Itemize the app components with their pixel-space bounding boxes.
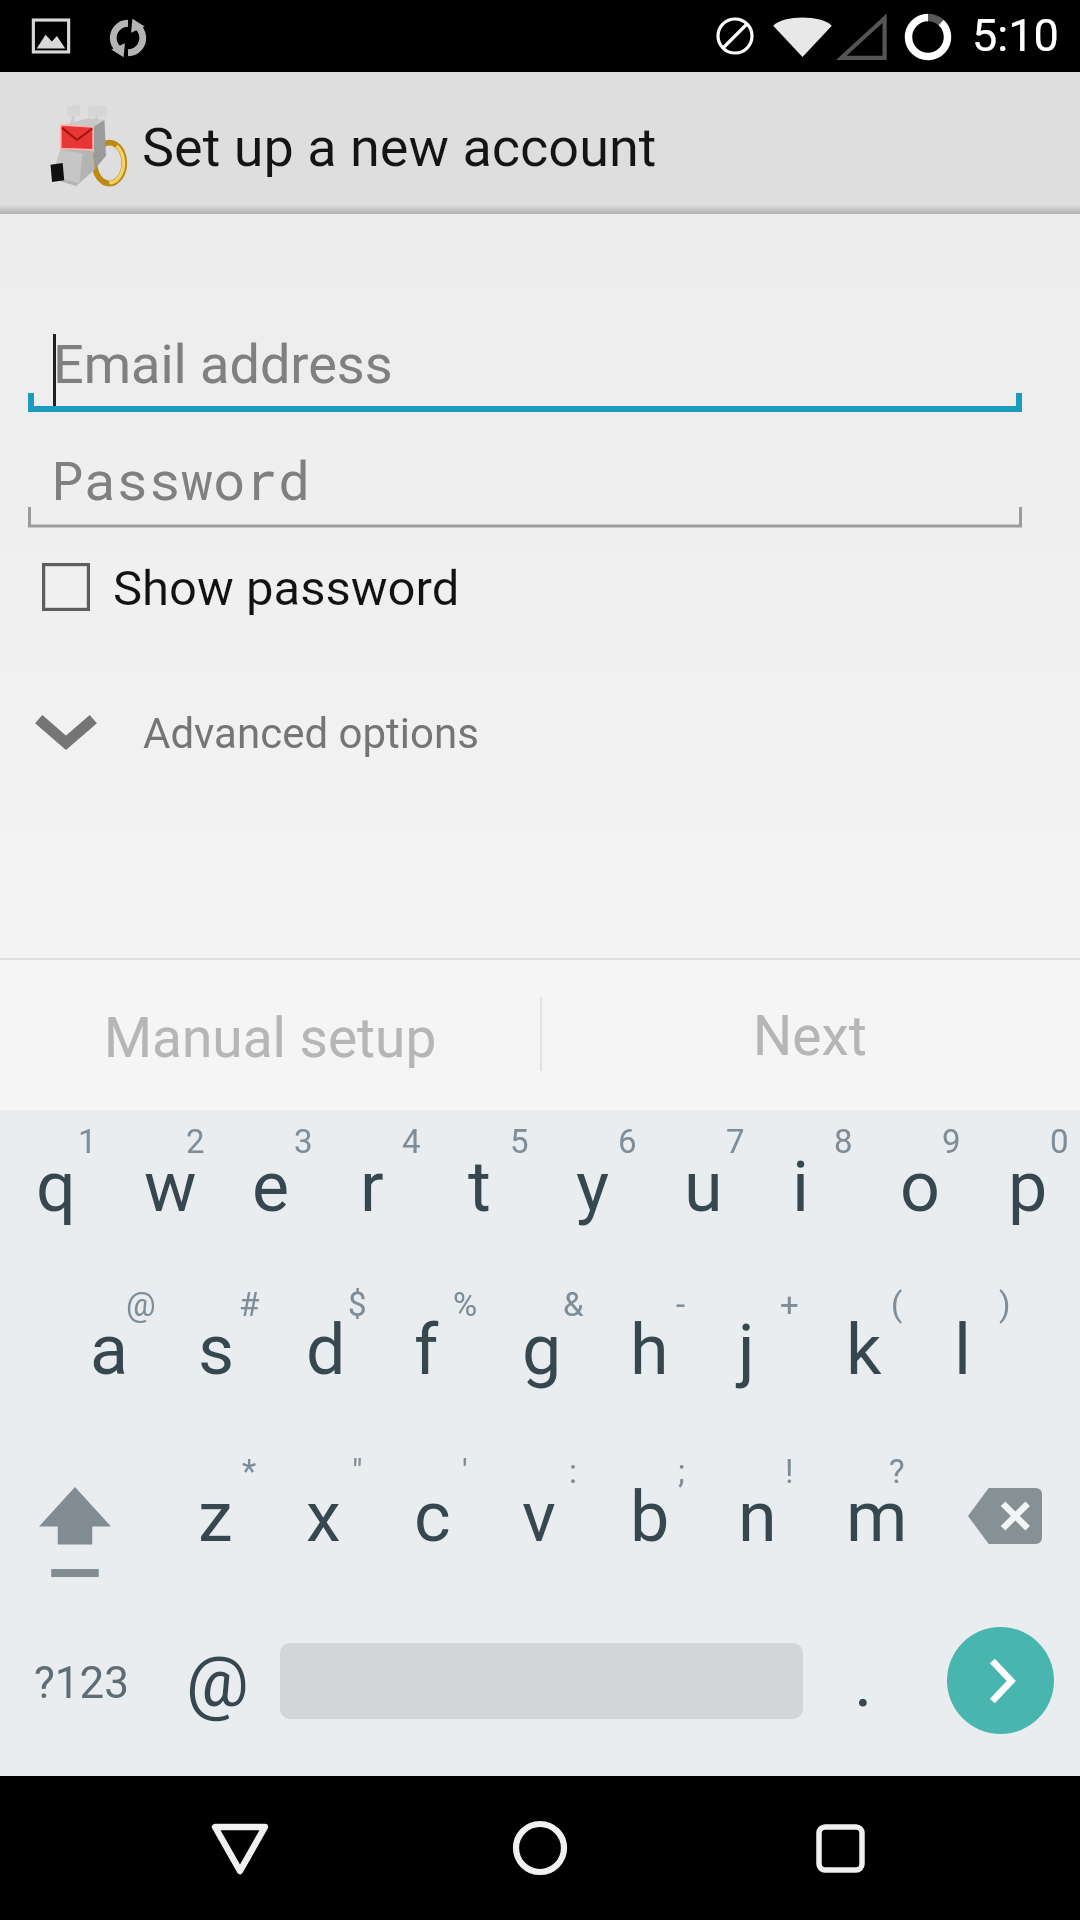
staticText: + (780, 1285, 799, 1324)
button[interactable]: Enter (920, 1600, 1080, 1766)
staticText: 2 (186, 1122, 205, 1161)
button[interactable]: g (486, 1263, 594, 1427)
staticText: ) (999, 1285, 1011, 1324)
staticText: 5 (510, 1122, 529, 1161)
staticText: 7 (726, 1122, 745, 1161)
button[interactable]: Next (540, 960, 1080, 1110)
staticText: Next (753, 1004, 867, 1068)
staticText: e (252, 1146, 290, 1228)
button[interactable]: m (810, 1430, 918, 1594)
staticText: ( (891, 1285, 903, 1324)
button[interactable]: o (864, 1100, 972, 1264)
button[interactable]: y (540, 1100, 648, 1264)
button[interactable]: w (108, 1100, 216, 1264)
button[interactable]: b (594, 1430, 702, 1594)
button[interactable]: v (486, 1430, 594, 1594)
staticText: l (954, 1309, 972, 1391)
button[interactable]: z (162, 1430, 270, 1594)
staticText: a (90, 1309, 129, 1391)
button[interactable]: Advanced options (0, 700, 1080, 768)
staticText: * (242, 1452, 257, 1491)
button[interactable]: q (0, 1100, 108, 1264)
button[interactable]: Shift (0, 1430, 162, 1596)
staticText: 8 (834, 1122, 853, 1161)
staticText: f (414, 1309, 439, 1391)
button[interactable]: j (702, 1263, 810, 1427)
staticText: ?123 (34, 1657, 129, 1709)
staticText: " (352, 1452, 363, 1491)
staticText: i (792, 1146, 810, 1228)
staticText: - (676, 1285, 686, 1324)
staticText: 5:10 (972, 9, 1059, 62)
staticText: t (468, 1146, 491, 1228)
button[interactable]: Password (0, 420, 1080, 534)
button[interactable]: @ (160, 1600, 280, 1766)
button[interactable]: r (324, 1100, 432, 1264)
staticText: ! (785, 1452, 794, 1491)
button[interactable]: t (432, 1100, 540, 1264)
button[interactable]: f (378, 1263, 486, 1427)
staticText: z (198, 1476, 233, 1558)
button[interactable]: Backspace (918, 1430, 1080, 1596)
button[interactable]: x (270, 1430, 378, 1594)
button[interactable]: a (54, 1263, 162, 1427)
staticText: b (630, 1476, 670, 1558)
staticText: r (360, 1146, 384, 1228)
staticText: 1 (78, 1122, 97, 1161)
staticText: 3 (294, 1122, 313, 1161)
staticText: w (144, 1146, 197, 1228)
button[interactable]: Recents (720, 1776, 960, 1920)
staticText: 6 (618, 1122, 637, 1161)
staticText: q (36, 1146, 76, 1228)
button[interactable]: l (918, 1263, 1026, 1427)
staticText: . (854, 1641, 873, 1723)
staticText: Manual setup (104, 1006, 437, 1070)
staticText: v (522, 1476, 556, 1558)
button[interactable]: e (216, 1100, 324, 1264)
staticText: d (306, 1309, 346, 1391)
button[interactable]: d (270, 1263, 378, 1427)
button[interactable]: k (810, 1263, 918, 1427)
staticText: ? (889, 1452, 905, 1491)
staticText: k (846, 1309, 882, 1391)
button[interactable]: u (648, 1100, 756, 1264)
staticText: @ (126, 1285, 156, 1324)
staticText: 0 (1050, 1122, 1069, 1161)
button[interactable]: Manual setup (0, 960, 540, 1110)
button[interactable]: Email address (0, 300, 1080, 415)
staticText: g (522, 1309, 562, 1391)
staticText: 4 (402, 1122, 421, 1161)
staticText: $ (348, 1285, 367, 1324)
button[interactable]: Back (120, 1776, 360, 1920)
staticText: ' (462, 1452, 468, 1491)
staticText: n (738, 1476, 777, 1558)
button[interactable]: Show password (0, 548, 1080, 626)
staticText: c (414, 1476, 451, 1558)
staticText: : (569, 1452, 577, 1491)
staticText: 9 (942, 1122, 961, 1161)
button[interactable]: h (594, 1263, 702, 1427)
button[interactable]: n (702, 1430, 810, 1594)
staticText: j (738, 1309, 755, 1391)
staticText: m (846, 1476, 908, 1558)
staticText: Advanced options (143, 709, 479, 758)
button[interactable]: . (803, 1600, 920, 1766)
button[interactable]: i (756, 1100, 864, 1264)
staticText: Show password (113, 560, 460, 617)
button[interactable]: s (162, 1263, 270, 1427)
button[interactable]: ?123 (0, 1600, 160, 1766)
staticText: % (453, 1285, 478, 1324)
button[interactable]: p (972, 1100, 1080, 1264)
button[interactable]: c (378, 1430, 486, 1594)
staticText: h (630, 1309, 669, 1391)
button[interactable]: Home (420, 1776, 660, 1920)
staticText: s (198, 1309, 235, 1391)
staticText: Set up a new account (142, 116, 657, 179)
staticText: ; (678, 1452, 685, 1491)
staticText: p (1008, 1146, 1048, 1228)
staticText: o (900, 1146, 940, 1228)
staticText: y (576, 1146, 610, 1228)
staticText: & (563, 1285, 584, 1324)
staticText: Password (51, 443, 311, 514)
button[interactable]: Space (280, 1600, 803, 1766)
